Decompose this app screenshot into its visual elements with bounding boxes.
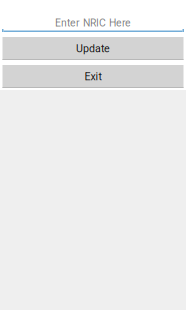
- button[interactable]: Update: [2, 37, 183, 60]
- button[interactable]: Exit: [2, 65, 183, 88]
- staticText: Enter NRIC Here: [55, 17, 131, 29]
- staticText: Exit: [84, 70, 101, 83]
- staticText: Update: [76, 42, 110, 55]
- button[interactable]: Enter NRIC Here: [0, 0, 186, 32]
